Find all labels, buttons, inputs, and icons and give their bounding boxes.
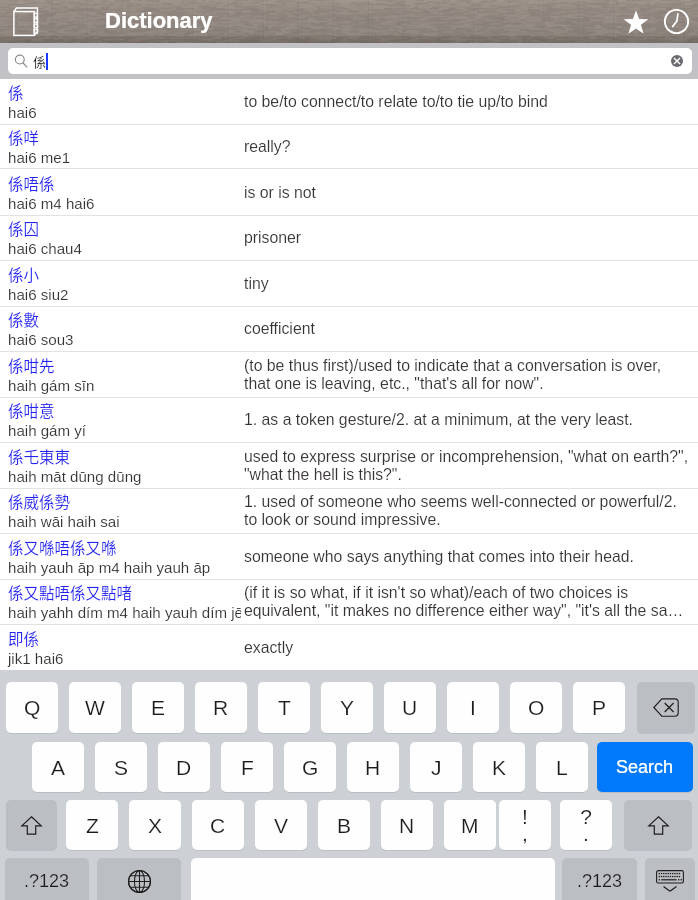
staticText: . <box>583 822 589 845</box>
button[interactable]: H <box>347 742 399 792</box>
staticText: B <box>337 814 352 837</box>
button[interactable]: 係數 <box>0 306 698 352</box>
staticText: hai6 <box>8 104 37 121</box>
button[interactable]: E <box>132 682 184 733</box>
staticText: 1. as a token gesture/2. at a minimum, a… <box>244 411 633 429</box>
button[interactable]: 係又點唔係又點啫 <box>0 579 698 625</box>
staticText: exactly <box>244 639 294 657</box>
button[interactable]: 即係 <box>0 625 698 671</box>
staticText: haih māt dūng dūng <box>8 468 142 485</box>
button[interactable]: L <box>536 742 588 792</box>
button[interactable]: Shift <box>624 800 692 850</box>
staticText: R <box>213 696 229 719</box>
staticText: tiny <box>244 275 269 293</box>
staticText: M <box>461 814 479 837</box>
button[interactable]: B <box>318 800 370 850</box>
button[interactable]: 係咁意 <box>0 397 698 443</box>
button[interactable]: R <box>195 682 247 733</box>
button[interactable]: 係威係勢 <box>0 488 698 534</box>
staticText: V <box>274 814 289 837</box>
button[interactable]: N <box>381 800 433 850</box>
staticText: S <box>114 756 129 779</box>
staticText: P <box>592 696 607 719</box>
staticText: Y <box>340 696 355 719</box>
button[interactable]: J <box>410 742 462 792</box>
staticText: coefficient <box>244 320 315 338</box>
button[interactable]: .?123 <box>562 858 637 900</box>
staticText: used to express surprise or incomprehens… <box>244 448 690 484</box>
staticText: 係又喺唔係又喺 <box>8 536 117 558</box>
button[interactable]: 係囚 <box>0 215 698 261</box>
button[interactable]: I <box>447 682 499 733</box>
staticText: hai6 chau4 <box>8 240 82 257</box>
staticText: O <box>528 696 545 719</box>
button[interactable]: Word list <box>6 2 46 42</box>
button[interactable]: Clear search text <box>667 51 687 71</box>
button[interactable]: C <box>192 800 244 850</box>
button[interactable]: A <box>32 742 84 792</box>
staticText: 即係 <box>8 627 40 649</box>
button[interactable]: D <box>158 742 210 792</box>
button[interactable]: 係小 <box>0 261 698 307</box>
button[interactable]: V <box>255 800 307 850</box>
staticText: is or is not <box>244 184 316 202</box>
button[interactable]: Change keyboard language <box>97 858 181 900</box>
button[interactable]: ? <box>560 800 612 850</box>
staticText: 1. used of someone who seems well-connec… <box>244 493 690 529</box>
staticText: 係囚 <box>8 217 40 239</box>
button[interactable]: P <box>573 682 625 733</box>
staticText: 係小 <box>8 263 40 285</box>
button[interactable]: K <box>473 742 525 792</box>
staticText: .?123 <box>577 871 623 891</box>
button[interactable]: 係唔係 <box>0 170 698 216</box>
button[interactable]: .?123 <box>5 858 89 900</box>
button[interactable]: Z <box>66 800 118 850</box>
staticText: 係咁先 <box>8 354 55 376</box>
staticText: U <box>402 696 418 719</box>
button[interactable]: 係 <box>0 79 698 125</box>
button[interactable]: M <box>444 800 496 850</box>
staticText: 係 <box>8 81 24 103</box>
button[interactable]: W <box>69 682 121 733</box>
button[interactable]: Y <box>321 682 373 733</box>
button[interactable]: T <box>258 682 310 733</box>
staticText: really? <box>244 138 291 156</box>
staticText: hai6 sou3 <box>8 331 74 348</box>
staticText: L <box>556 756 568 779</box>
staticText: A <box>51 756 66 779</box>
button[interactable]: 係乇東東 <box>0 443 698 489</box>
staticText: hai6 m4 hai6 <box>8 195 95 212</box>
staticText: 係數 <box>8 308 40 330</box>
staticText: hai6 me1 <box>8 149 71 166</box>
staticText: (if it is so what, if it isn't so what)/… <box>244 584 690 620</box>
button[interactable]: Backspace <box>637 682 695 733</box>
button[interactable]: Favourites <box>615 1 657 43</box>
button[interactable]: 係 <box>8 48 692 74</box>
button[interactable]: History <box>655 0 697 42</box>
button[interactable]: X <box>129 800 181 850</box>
button[interactable]: Q <box>6 682 58 733</box>
staticText: prisoner <box>244 229 302 247</box>
button[interactable]: O <box>510 682 562 733</box>
staticText: to be/to connect/to relate to/to tie up/… <box>244 93 548 111</box>
staticText: , <box>522 822 528 845</box>
button[interactable]: S <box>95 742 147 792</box>
staticText: jik1 hai6 <box>8 650 64 667</box>
staticText: 係 <box>33 52 47 71</box>
button[interactable]: ! <box>499 800 551 850</box>
button[interactable]: 係咁先 <box>0 352 698 398</box>
staticText: 係乇東東 <box>8 445 71 467</box>
staticText: hai6 siu2 <box>8 286 69 303</box>
button[interactable]: U <box>384 682 436 733</box>
button[interactable]: Hide keyboard <box>645 858 695 900</box>
button[interactable]: 係又喺唔係又喺 <box>0 534 698 580</box>
button[interactable]: G <box>284 742 336 792</box>
staticText: Dictionary <box>105 8 213 33</box>
button[interactable]: F <box>221 742 273 792</box>
button[interactable]: Shift <box>6 800 57 850</box>
button[interactable]: 係咩 <box>0 124 698 169</box>
staticText: J <box>431 756 442 779</box>
staticText: 係唔係 <box>8 172 55 194</box>
button[interactable]: Search <box>597 742 693 792</box>
